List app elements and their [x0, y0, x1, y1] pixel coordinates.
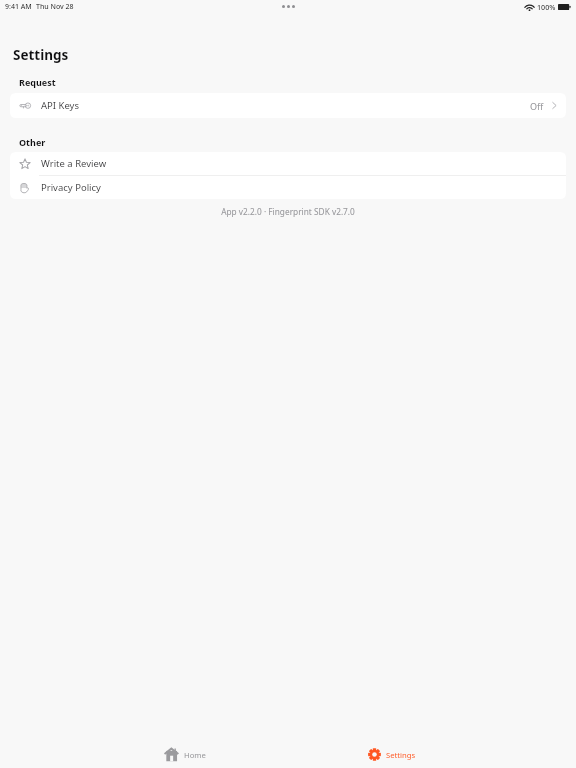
button[interactable]: Write a Review: [10, 152, 566, 175]
staticText: Settings: [13, 46, 69, 64]
button[interactable]: Settings: [368, 743, 416, 766]
button[interactable]: API Keys: [10, 93, 566, 118]
staticText: Home: [184, 750, 206, 760]
staticText: Request: [19, 76, 56, 88]
button[interactable]: Home: [164, 742, 206, 767]
staticText: Other: [19, 136, 46, 148]
staticText: 9:41 AM: [5, 2, 32, 12]
staticText: Write a Review: [41, 157, 107, 170]
staticText: Privacy Policy: [41, 181, 101, 194]
staticText: API Keys: [41, 99, 79, 112]
staticText: Thu Nov 28: [36, 2, 74, 12]
staticText: 100%: [537, 2, 556, 12]
button[interactable]: Privacy Policy: [10, 176, 566, 199]
staticText: App v2.2.0 · Fingerprint SDK v2.7.0: [0, 206, 576, 217]
staticText: Settings: [386, 750, 416, 760]
staticText: Off: [530, 100, 544, 112]
